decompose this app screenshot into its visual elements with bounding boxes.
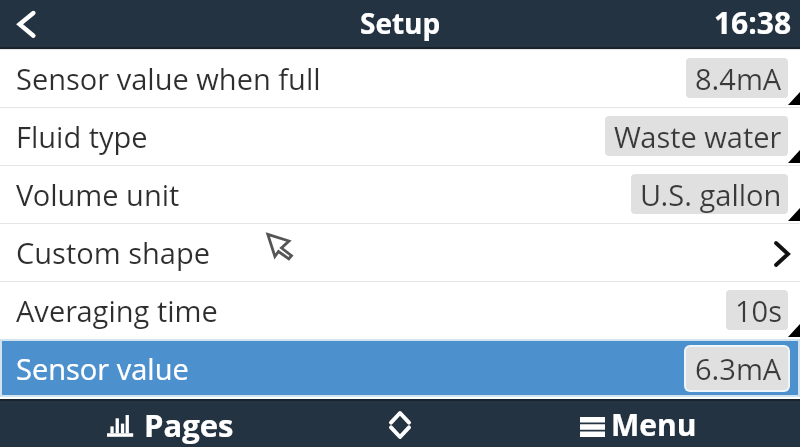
staticText: Sensor value when full (16, 59, 321, 98)
staticText: Sensor value (16, 349, 189, 388)
staticText: Setup (360, 4, 441, 42)
staticText: 16:38 (714, 2, 792, 43)
staticText: Averaging time (16, 291, 218, 330)
button[interactable]: Pages (0, 399, 280, 447)
button[interactable]: Sensor value when full (0, 49, 800, 107)
button[interactable]: Custom shape (0, 223, 800, 281)
staticText: Menu (611, 404, 697, 445)
staticText: Volume unit (16, 175, 180, 214)
button[interactable]: Volume unit (0, 165, 800, 223)
staticText: U.S. gallon (640, 175, 782, 214)
staticText: 10s (735, 291, 782, 330)
staticText: Pages (144, 404, 234, 446)
button[interactable]: Sensor value (0, 339, 800, 397)
button[interactable]: Menu (520, 399, 800, 447)
button[interactable]: Averaging time (0, 281, 800, 339)
staticText: 6.3mA (695, 349, 782, 388)
button[interactable]: Back (0, 0, 52, 49)
staticText: 8.4mA (695, 59, 782, 98)
staticText: Custom shape (16, 233, 210, 272)
staticText: Fluid type (16, 117, 148, 156)
button[interactable]: Scroll up and down (360, 399, 440, 447)
button[interactable]: Fluid type (0, 107, 800, 165)
staticText: Waste water (614, 117, 782, 156)
